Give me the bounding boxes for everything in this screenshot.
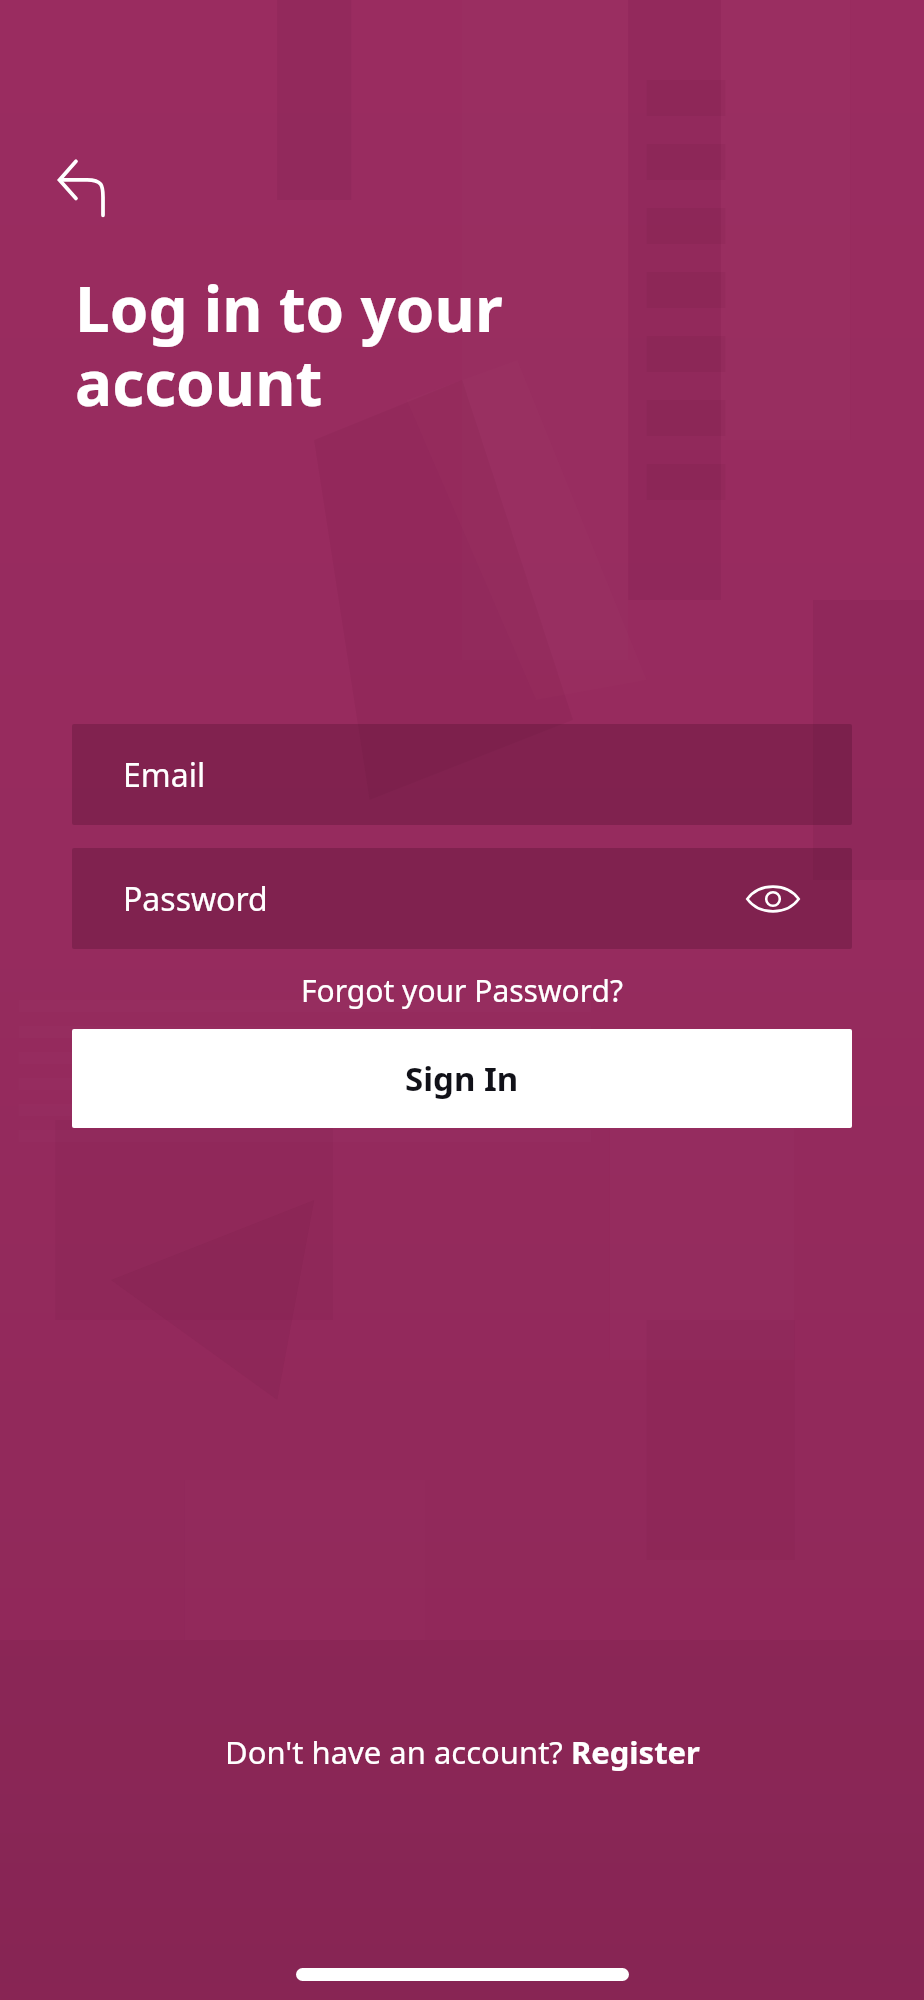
button[interactable]: Show password	[745, 879, 801, 919]
button[interactable]: Sign In	[72, 1029, 852, 1128]
button[interactable]: Forgot your Password?	[289, 964, 635, 1017]
staticText: Forgot your Password?	[301, 970, 623, 1011]
button[interactable]: Don't have an account? Register	[209, 1723, 716, 1781]
staticText: Email	[123, 753, 206, 797]
button[interactable]: Back	[56, 152, 128, 224]
staticText: Password	[123, 877, 268, 921]
button[interactable]: Email	[72, 724, 852, 825]
staticText: Sign In	[405, 1056, 519, 1101]
staticText: Log in to your account	[75, 266, 503, 424]
button[interactable]: Password	[72, 848, 852, 949]
staticText: Don't have an account? Register	[225, 1731, 700, 1773]
